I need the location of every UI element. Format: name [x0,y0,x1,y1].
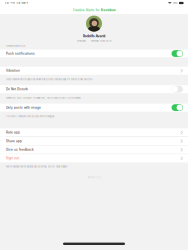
staticText: Push notifications [6,52,35,55]
staticText: Give us feedback [6,148,34,151]
staticText: Only receive notifications when the post… [6,78,92,81]
staticText: Vibration [6,69,20,72]
button[interactable]: Share app [0,137,188,145]
staticText: More awesome features are coming soon, s… [6,165,68,168]
staticText: When Do Not Disturb is enabled, notifica… [6,96,81,99]
staticText: Rate app [6,131,20,134]
staticText: Receive alerts by [6,44,25,47]
button[interactable]: Only posts with image [0,104,188,112]
staticText: Rodolfo Avanti [82,34,105,38]
button[interactable]: Rate app [0,128,188,137]
button[interactable]: Do Not Disturb [0,85,188,93]
staticText: Do Not Disturb [6,87,28,91]
staticText: Nextdoor · Member since 2019 [77,39,111,42]
staticText: You will receive only posts with images [6,115,54,118]
staticText: Sign out [6,156,19,160]
staticText: version 1.0.3 [87,176,100,179]
staticText: 2:30 PM Sat May 4 [4,1,28,4]
staticText: Nextdoor [100,8,115,12]
staticText: 100% [173,2,178,4]
button[interactable]: Profile photo [86,16,102,32]
button[interactable]: Sign out [0,154,188,162]
button[interactable]: Push notifications [0,50,188,58]
staticText: Share app [6,139,22,143]
button[interactable]: Give us feedback [0,146,188,154]
button[interactable]: Vibration [0,67,188,75]
staticText: Freebie Alerts for [72,8,100,12]
staticText: Only posts with image [6,106,41,109]
